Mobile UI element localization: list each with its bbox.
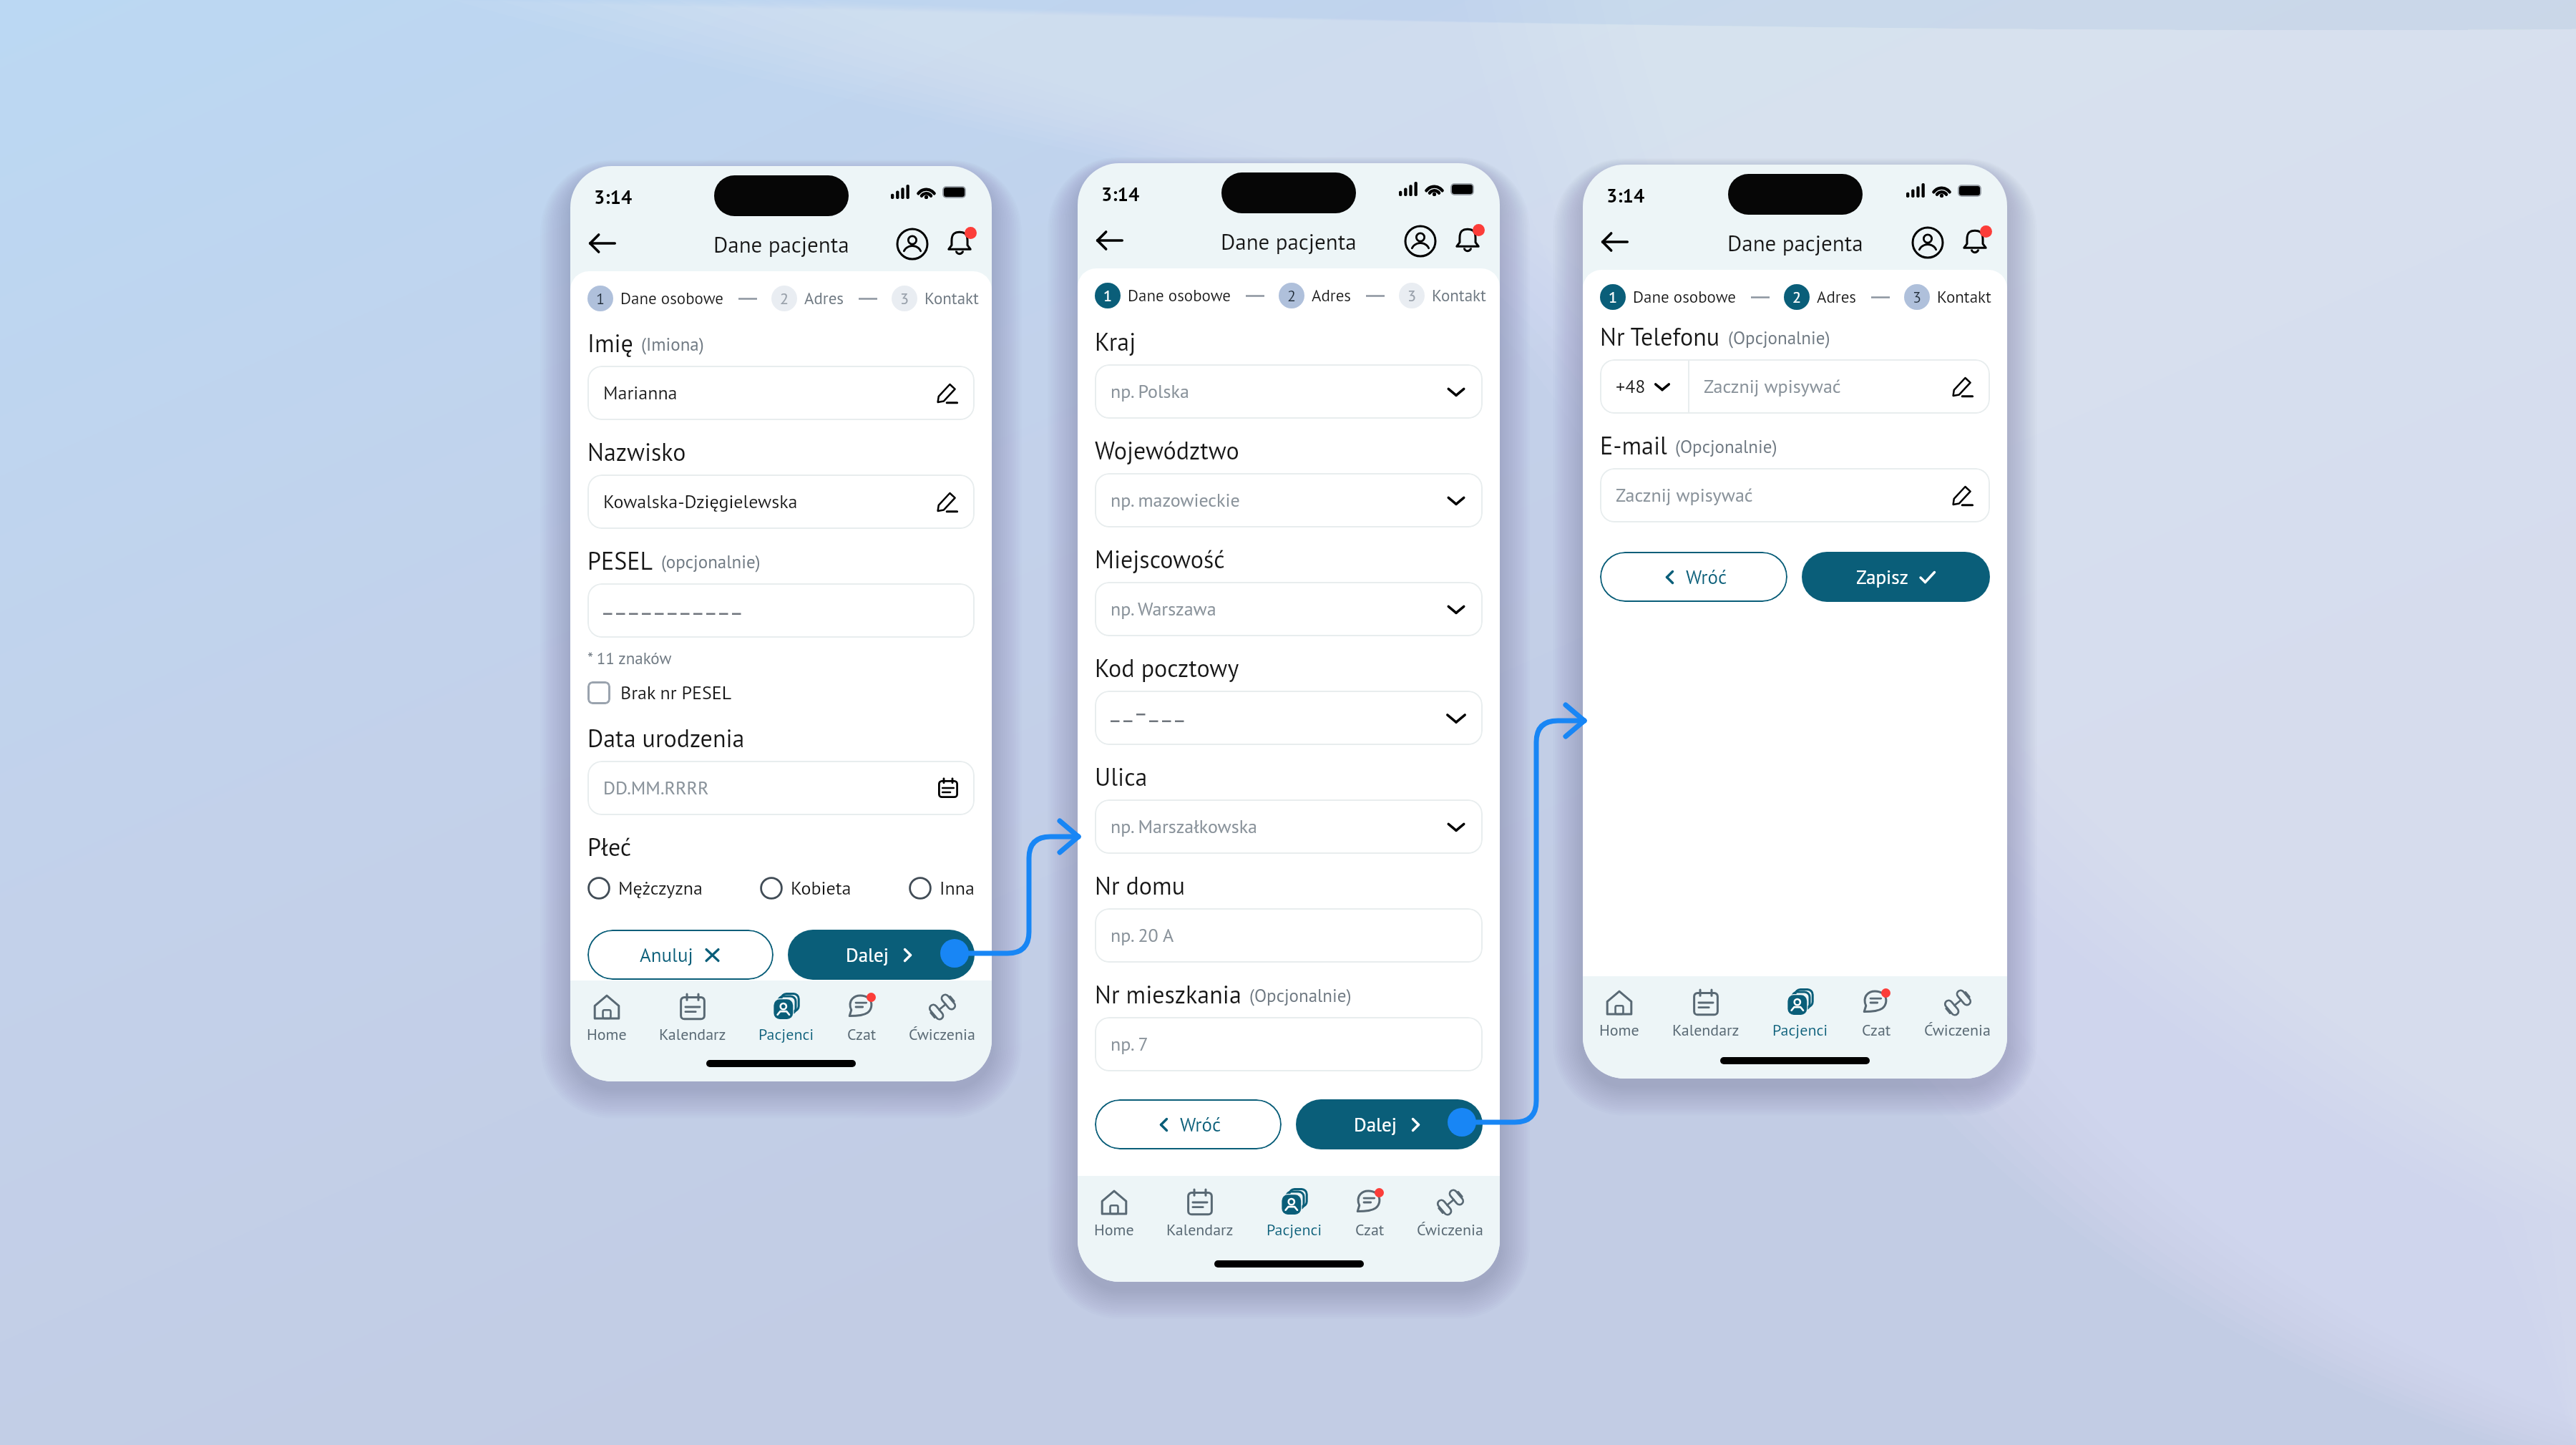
button[interactable]: Ćwiczenia — [1412, 1187, 1488, 1240]
button[interactable]: Back — [1597, 225, 1631, 259]
button[interactable]: Zacznij wpisywać — [1600, 468, 1990, 522]
button[interactable]: 1 — [587, 286, 613, 311]
staticText: Czat — [1862, 1020, 1891, 1040]
staticText: +48 — [1616, 374, 1646, 399]
button[interactable]: Zacznij wpisywać — [1689, 359, 1990, 414]
staticText: Wróć — [1686, 565, 1727, 590]
staticText: 1 — [596, 288, 605, 308]
button[interactable] — [1095, 691, 1483, 745]
button[interactable]: 2 — [1784, 284, 1810, 310]
button[interactable]: Home — [1594, 988, 1644, 1040]
staticText: Inna — [940, 876, 975, 900]
button[interactable]: Kobieta — [760, 876, 852, 900]
staticText: (Imiona) — [641, 333, 704, 356]
button[interactable]: Kowalska-Dzięgielewska — [587, 475, 975, 529]
button[interactable]: Kalendarz — [1667, 988, 1745, 1040]
button[interactable] — [587, 583, 975, 638]
staticText: Zapisz — [1856, 565, 1908, 590]
button[interactable]: Czat — [1856, 988, 1896, 1040]
button[interactable]: 3 — [892, 286, 917, 311]
button[interactable]: 3 — [1399, 283, 1425, 308]
button[interactable]: Dalej — [1296, 1099, 1483, 1149]
button[interactable]: Back — [1092, 223, 1126, 258]
staticText: Dane pacjenta — [1727, 228, 1863, 257]
staticText: Pacjenci — [758, 1024, 814, 1044]
staticText: Kod pocztowy — [1095, 652, 1239, 683]
staticText: np. 7 — [1111, 1032, 1148, 1056]
staticText: 2 — [780, 288, 789, 308]
staticText: 1 — [1609, 287, 1617, 307]
staticText: np. 20 A — [1111, 923, 1174, 948]
staticText: Imię — [587, 327, 633, 359]
button[interactable]: np. 20 A — [1095, 908, 1483, 963]
button[interactable]: Home — [582, 992, 632, 1044]
staticText: Dalej — [1354, 1112, 1397, 1137]
button[interactable]: Kalendarz — [654, 992, 731, 1044]
staticText: Nazwisko — [587, 436, 686, 467]
button[interactable]: 3 — [1904, 284, 1930, 310]
button[interactable]: Ćwiczenia — [904, 992, 980, 1044]
staticText: 2 — [1792, 287, 1801, 307]
button[interactable]: Wróć — [1600, 552, 1787, 602]
staticText: 3 — [1913, 287, 1921, 307]
button[interactable]: Pacjenci — [1262, 1187, 1327, 1240]
button[interactable]: Home — [1089, 1187, 1139, 1240]
staticText: Nr Telefonu — [1600, 321, 1720, 352]
button[interactable]: Back — [585, 226, 619, 261]
button[interactable]: np. 7 — [1095, 1017, 1483, 1071]
staticText: Brak nr PESEL — [620, 681, 732, 705]
button[interactable]: np. Polska — [1095, 364, 1483, 419]
button[interactable]: np. Warszawa — [1095, 582, 1483, 636]
staticText: 3:14 — [1101, 182, 1140, 207]
staticText: 3:14 — [1606, 183, 1645, 208]
button[interactable]: Notifications — [1958, 225, 1991, 258]
button[interactable]: Inna — [909, 876, 975, 900]
staticText: Dane pacjenta — [1221, 227, 1357, 256]
staticText: Anuluj — [640, 943, 693, 968]
staticText: Home — [587, 1024, 627, 1044]
button[interactable]: Notifications — [1451, 223, 1484, 256]
staticText: Ćwiczenia — [1924, 1020, 1991, 1040]
button[interactable]: 2 — [771, 286, 797, 311]
button[interactable]: 2 — [1279, 283, 1304, 308]
staticText: Ćwiczenia — [909, 1024, 975, 1044]
staticText: Pacjenci — [1267, 1220, 1322, 1240]
staticText: np. Warszawa — [1111, 597, 1216, 621]
staticText: Czat — [1355, 1220, 1385, 1240]
staticText: Adres — [1817, 286, 1857, 308]
button[interactable]: np. Marszałkowska — [1095, 799, 1483, 854]
button[interactable]: Wróć — [1095, 1099, 1282, 1149]
staticText: Płeć — [587, 831, 632, 862]
button[interactable]: 1 — [1600, 284, 1626, 310]
button[interactable]: np. mazowieckie — [1095, 473, 1483, 527]
button[interactable]: +48 — [1600, 359, 1688, 414]
button[interactable]: Kalendarz — [1161, 1187, 1239, 1240]
button[interactable]: Account — [1404, 225, 1437, 258]
staticText: (Opcjonalnie) — [1728, 326, 1830, 349]
staticText: Mężczyzna — [618, 876, 703, 900]
button[interactable]: Brak nr PESEL — [587, 681, 732, 705]
button[interactable]: 1 — [1095, 283, 1121, 308]
button[interactable]: Marianna — [587, 366, 975, 420]
staticText: Ćwiczenia — [1417, 1220, 1483, 1240]
staticText: Nr mieszkania — [1095, 978, 1241, 1010]
button[interactable]: Ćwiczenia — [1919, 988, 1996, 1040]
button[interactable]: Czat — [1350, 1187, 1390, 1240]
button[interactable]: Mężczyzna — [587, 876, 703, 900]
button[interactable]: Czat — [841, 992, 882, 1044]
button[interactable]: DD.MM.RRRR — [587, 761, 975, 815]
button[interactable]: Anuluj — [587, 930, 774, 980]
button[interactable]: Dalej — [788, 930, 975, 980]
button[interactable]: Notifications — [943, 226, 976, 259]
staticText: Dane osobowe — [1633, 286, 1737, 308]
button[interactable]: Pacjenci — [753, 992, 819, 1044]
button[interactable]: Zapisz — [1802, 552, 1990, 602]
button[interactable]: Account — [896, 228, 929, 261]
staticText: Kalendarz — [1166, 1220, 1234, 1240]
button[interactable]: Pacjenci — [1767, 988, 1833, 1040]
staticText: Zacznij wpisywać — [1616, 483, 1753, 507]
staticText: Marianna — [603, 381, 678, 405]
staticText: Kobieta — [791, 876, 852, 900]
staticText: Dane pacjenta — [713, 230, 849, 258]
button[interactable]: Account — [1911, 226, 1944, 259]
